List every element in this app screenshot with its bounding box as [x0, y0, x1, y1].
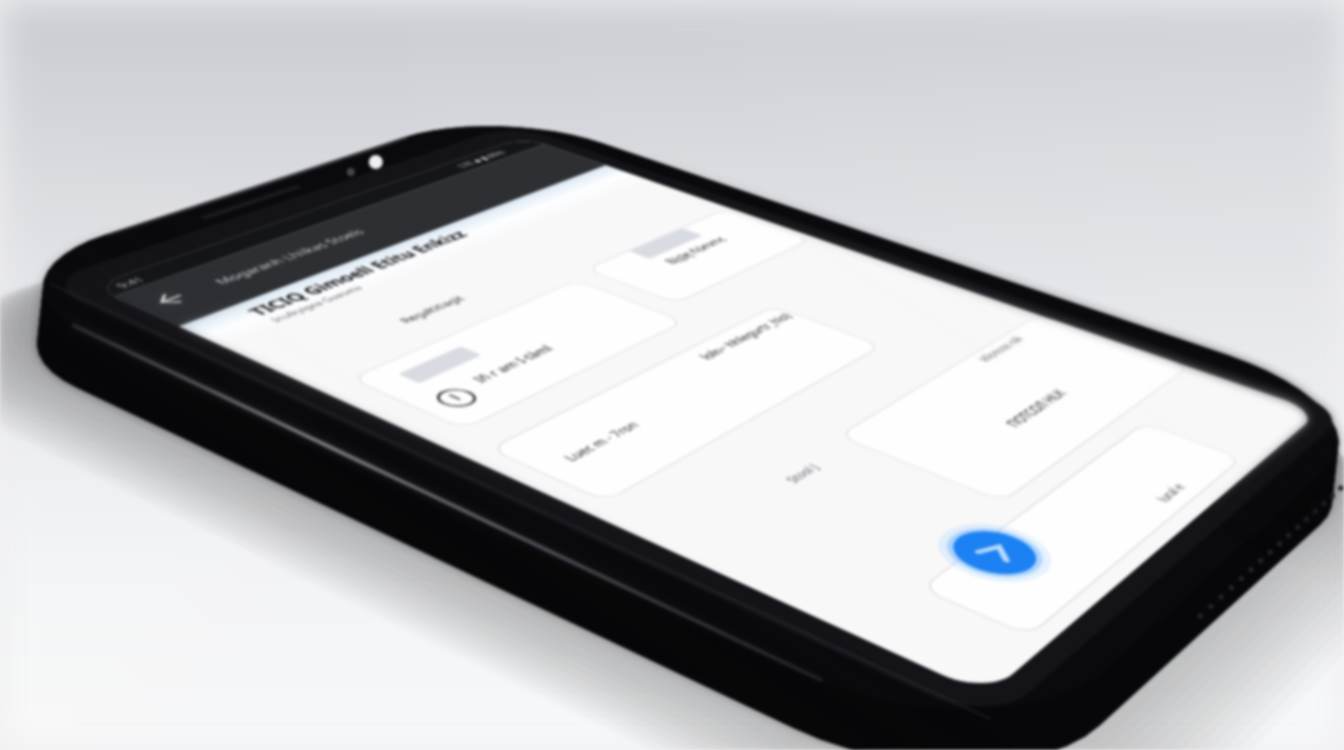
button[interactable]: Phone screen — [0, 0, 1344, 750]
